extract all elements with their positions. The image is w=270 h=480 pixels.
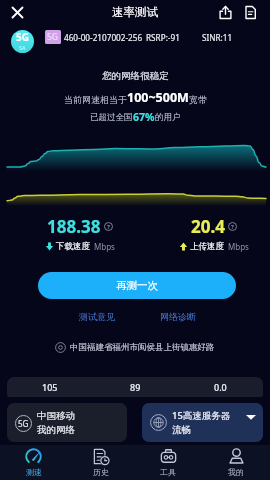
staticText: 测速 bbox=[26, 467, 42, 477]
staticText: 再测一次 bbox=[116, 279, 158, 292]
button[interactable]: 测速 bbox=[0, 445, 67, 480]
staticText: SA bbox=[19, 44, 26, 51]
staticText: 当前网速相当于 bbox=[64, 94, 127, 105]
staticText: 我的网络 bbox=[37, 424, 75, 436]
staticText: 67% bbox=[133, 110, 155, 124]
staticText: SINR:11 bbox=[202, 32, 233, 43]
button[interactable]: 5G bbox=[7, 403, 127, 442]
button[interactable]: 测试意见 bbox=[74, 309, 120, 324]
staticText: 网络诊断 bbox=[160, 311, 196, 322]
staticText: 速率测试 bbox=[112, 5, 158, 19]
staticText: 0.0 bbox=[214, 381, 227, 393]
button[interactable]: 15高速服务器 bbox=[142, 403, 263, 442]
staticText: RSRP:-91 bbox=[146, 32, 180, 43]
staticText: 测试意见 bbox=[79, 311, 115, 322]
staticText: ? bbox=[107, 223, 110, 231]
staticText: 历史 bbox=[93, 467, 109, 477]
staticText: Mbps bbox=[228, 241, 249, 252]
staticText: 下载速度 bbox=[56, 241, 90, 252]
button[interactable]: 历史 bbox=[67, 445, 134, 480]
staticText: 5G bbox=[18, 418, 29, 429]
button[interactable]: 工具 bbox=[134, 445, 202, 480]
staticText: 5G bbox=[16, 30, 29, 44]
staticText: 宽带 bbox=[189, 94, 207, 105]
staticText: 中国移动 bbox=[37, 410, 75, 422]
button[interactable]: 我的 bbox=[202, 445, 270, 480]
staticText: 460-00-2107002-256 bbox=[64, 32, 143, 43]
staticText: 我的 bbox=[228, 467, 244, 477]
staticText: 5G bbox=[47, 31, 59, 43]
staticText: 105 bbox=[42, 381, 58, 393]
staticText: 流畅 bbox=[172, 424, 191, 436]
staticText: 15高速服务器 bbox=[172, 409, 231, 422]
staticText: 您的网络很稳定 bbox=[102, 70, 169, 82]
staticText: Mbps bbox=[94, 241, 115, 252]
staticText: 20.4 bbox=[191, 215, 225, 238]
staticText: 的用户 bbox=[155, 112, 181, 123]
staticText: 100~500M bbox=[127, 89, 189, 106]
button[interactable]: Share bbox=[218, 5, 233, 20]
button[interactable]: 再测一次 bbox=[38, 272, 236, 299]
button[interactable]: Close bbox=[9, 4, 26, 21]
staticText: 89 bbox=[130, 381, 141, 393]
button[interactable]: Report bbox=[243, 5, 258, 20]
staticText: 工具 bbox=[160, 467, 176, 477]
staticText: 188.38 bbox=[47, 215, 101, 238]
button[interactable]: 网络诊断 bbox=[155, 309, 201, 324]
staticText: ? bbox=[231, 223, 234, 231]
staticText: 已超过全国 bbox=[90, 112, 133, 123]
staticText: 中国福建省福州市闽侯县上街镇惠好路 bbox=[70, 342, 215, 353]
staticText: 上传速度 bbox=[190, 241, 224, 252]
